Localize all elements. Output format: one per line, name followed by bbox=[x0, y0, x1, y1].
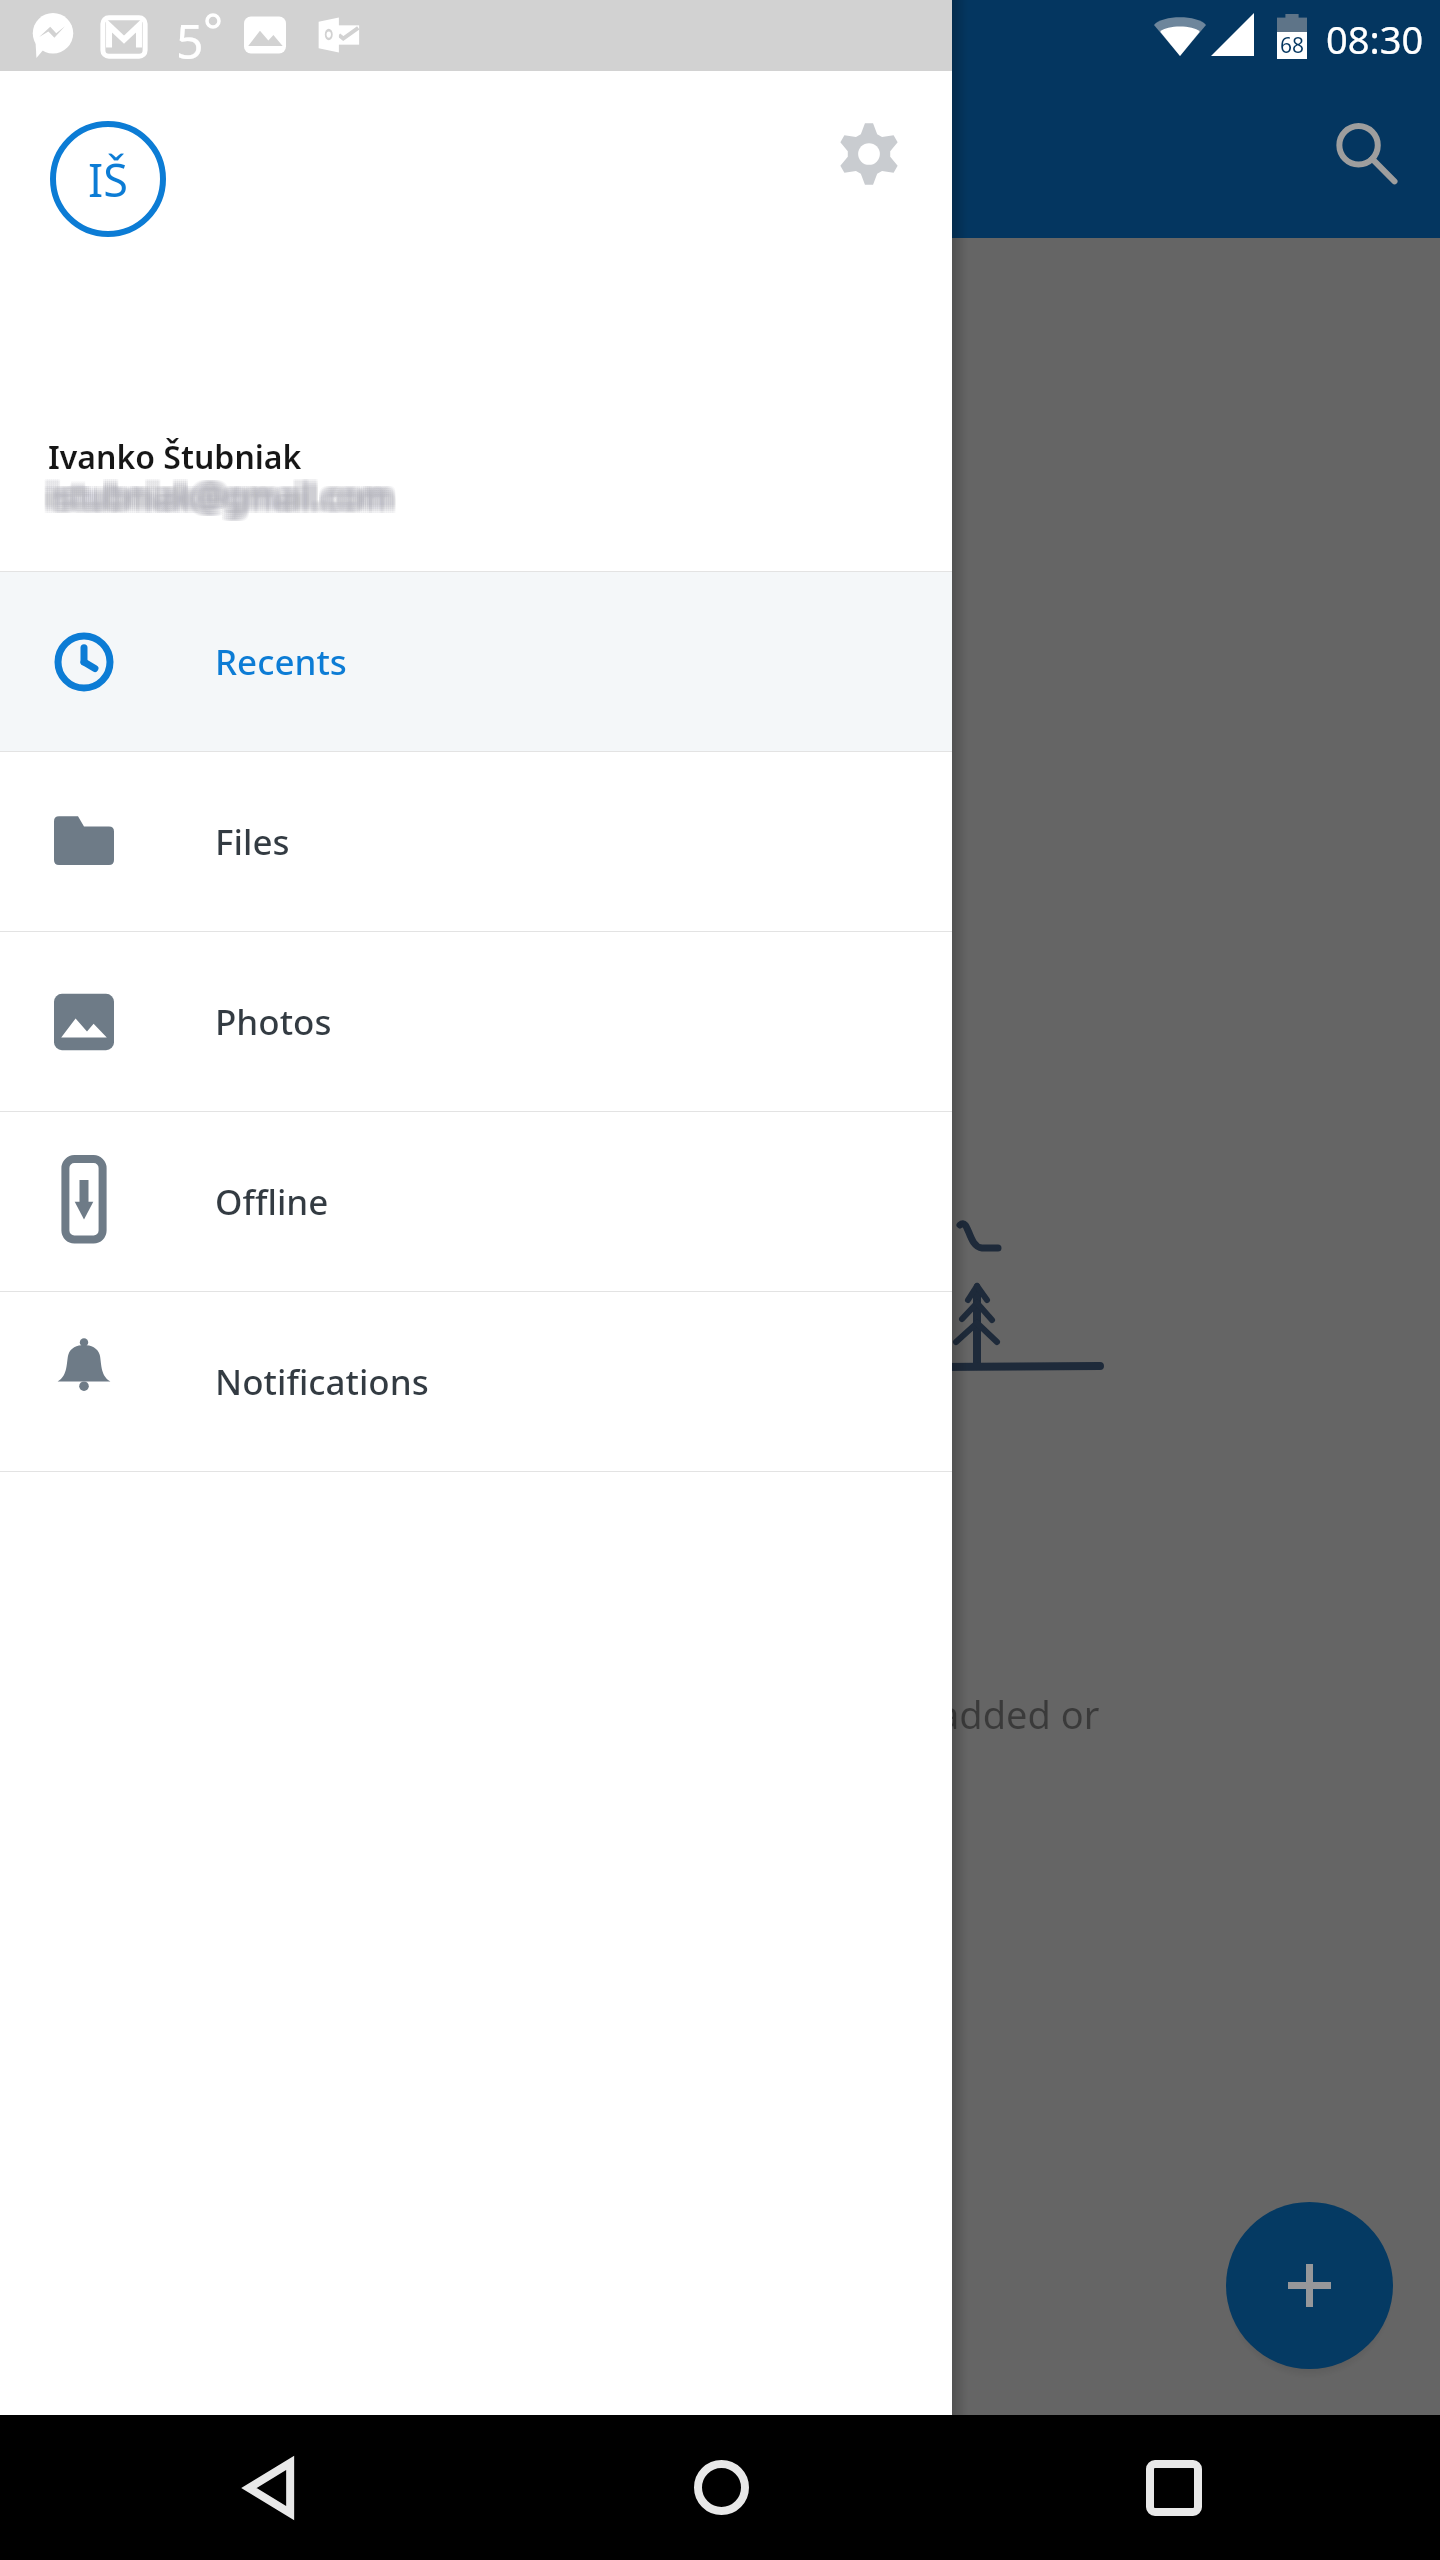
staticText: istubniak@gmail.com bbox=[54, 475, 398, 521]
button[interactable]: Photos bbox=[0, 932, 952, 1111]
button[interactable]: Account bbox=[50, 121, 166, 237]
button[interactable]: Back bbox=[197, 2415, 342, 2560]
staticText: 08:30 bbox=[1326, 13, 1424, 65]
staticText: istubniak@gmail.com bbox=[54, 473, 398, 519]
staticText: Photos bbox=[215, 998, 332, 1046]
staticText: istubniak@gmail.com bbox=[54, 477, 398, 523]
staticText: istubniak@gmail.com bbox=[48, 477, 392, 523]
staticText: istubniak@gmail.com bbox=[46, 473, 390, 519]
staticText: istubniak@gmail.com bbox=[52, 469, 396, 515]
staticText: istubniak@gmail.com bbox=[46, 469, 390, 515]
staticText: Ivanko Štubniak bbox=[48, 435, 302, 479]
staticText: istubniak@gmail.com bbox=[46, 477, 390, 523]
staticText: istubniak@gmail.com bbox=[50, 469, 394, 515]
staticText: Offline bbox=[215, 1178, 329, 1226]
staticText: istubniak@gmail.com bbox=[42, 471, 386, 517]
staticText: istubniak@gmail.com bbox=[42, 473, 386, 519]
staticText: istubniak@gmail.com bbox=[50, 473, 394, 519]
staticText: istubniak@gmail.com bbox=[48, 471, 392, 517]
button[interactable]: Files bbox=[0, 752, 952, 931]
button[interactable]: Recent apps bbox=[1101, 2415, 1246, 2560]
staticText: Recents bbox=[215, 638, 347, 686]
staticText: istubniak@gmail.com bbox=[54, 469, 398, 515]
staticText: IŠ bbox=[88, 149, 128, 210]
button[interactable]: Search bbox=[1310, 98, 1422, 210]
staticText: istubniak@gmail.com bbox=[50, 471, 394, 517]
staticText: 68 bbox=[1280, 31, 1305, 60]
staticText: istubniak@gmail.com bbox=[42, 475, 386, 521]
staticText: istubniak@gmail.com bbox=[48, 469, 392, 515]
staticText: istubniak@gmail.com bbox=[44, 473, 388, 519]
staticText: istubniak@gmail.com bbox=[52, 477, 396, 523]
button[interactable]: Settings bbox=[813, 98, 925, 210]
staticText: istubniak@gmail.com bbox=[42, 469, 386, 515]
staticText: istubniak@gmail.com bbox=[52, 471, 396, 517]
staticText: istubniak@gmail.com bbox=[52, 473, 396, 519]
staticText: istubniak@gmail.com bbox=[50, 475, 394, 521]
staticText: 5 bbox=[176, 8, 204, 73]
staticText: istubniak@gmail.com bbox=[54, 471, 398, 517]
button[interactable]: Add bbox=[1226, 2202, 1393, 2369]
staticText: istubniak@gmail.com bbox=[44, 475, 388, 521]
staticText: istubniak@gmail.com bbox=[46, 475, 390, 521]
staticText: istubniak@gmail.com bbox=[52, 475, 396, 521]
staticText: istubniak@gmail.com bbox=[48, 473, 392, 519]
staticText: istubniak@gmail.com bbox=[44, 469, 388, 515]
staticText: istubniak@gmail.com bbox=[48, 475, 392, 521]
staticText: istubniak@gmail.com bbox=[46, 471, 390, 517]
staticText: added or bbox=[938, 1688, 1100, 1740]
staticText: Notifications bbox=[215, 1358, 429, 1406]
staticText: istubniak@gmail.com bbox=[50, 477, 394, 523]
button[interactable]: Offline bbox=[0, 1112, 952, 1291]
staticText: Files bbox=[215, 818, 290, 866]
button[interactable]: Notifications bbox=[0, 1292, 952, 1471]
button[interactable]: Home bbox=[649, 2415, 794, 2560]
button[interactable]: Recents bbox=[0, 572, 952, 751]
staticText: istubniak@gmail.com bbox=[42, 477, 386, 523]
staticText: istubniak@gmail.com bbox=[44, 471, 388, 517]
staticText: istubniak@gmail.com bbox=[44, 477, 388, 523]
